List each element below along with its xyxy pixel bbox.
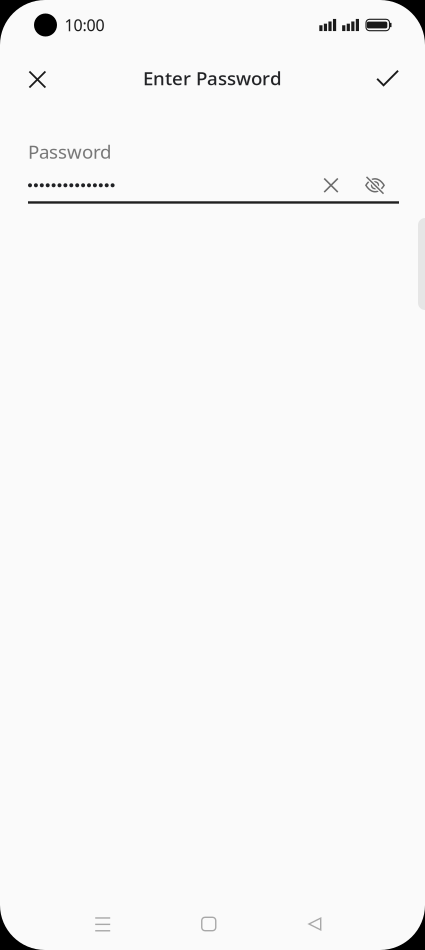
staticText: Password — [28, 139, 111, 164]
button[interactable]: Home — [177, 902, 241, 946]
button[interactable]: Back — [283, 902, 347, 946]
button[interactable]: Close — [13, 54, 61, 102]
button[interactable]: Confirm — [364, 54, 412, 102]
staticText: Enter Password — [143, 66, 282, 90]
button[interactable]: Show password — [351, 169, 399, 201]
button[interactable]: Recent apps — [71, 902, 135, 946]
button[interactable]: Clear password — [311, 169, 351, 201]
staticText: 10:00 — [64, 14, 104, 36]
